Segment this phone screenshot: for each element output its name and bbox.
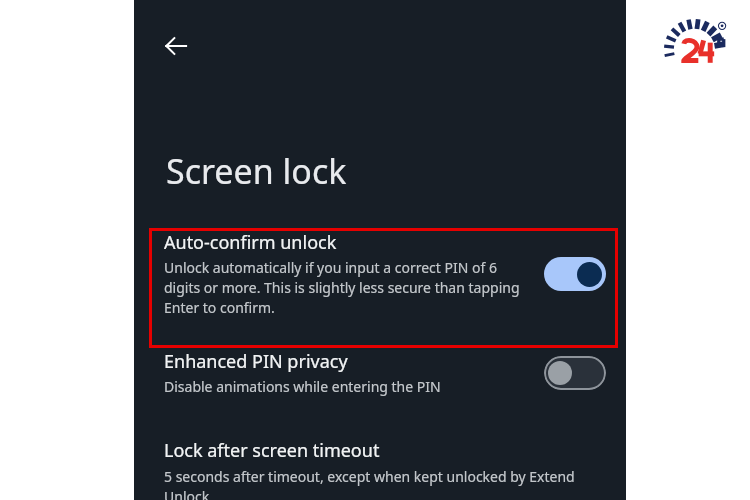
- button[interactable]: Auto-confirm unlock: [134, 224, 626, 323]
- button[interactable]: Off: [544, 356, 606, 390]
- staticText: Lock after screen timeout: [164, 438, 380, 463]
- staticText: Auto-confirm unlock: [164, 230, 337, 255]
- staticText: Screen lock: [166, 148, 347, 194]
- button[interactable]: On: [544, 257, 606, 291]
- button[interactable]: Lock after screen timeout: [134, 438, 626, 500]
- staticText: Disable animations while entering the PI…: [164, 377, 441, 396]
- button[interactable]: Back: [152, 22, 200, 70]
- staticText: Unlock automatically if you input a corr…: [164, 258, 530, 317]
- button[interactable]: Enhanced PIN privacy: [134, 343, 626, 402]
- staticText: Enhanced PIN privacy: [164, 349, 348, 374]
- staticText: 5 seconds after timeout, except when kep…: [164, 467, 602, 500]
